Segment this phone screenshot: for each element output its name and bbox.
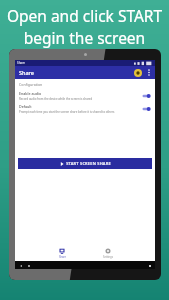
button[interactable]: More options: [145, 66, 152, 79]
staticText: Share: [59, 255, 66, 259]
button[interactable]: Share: [49, 248, 75, 259]
button[interactable]: Default: [19, 104, 151, 114]
staticText: begin the screen share: [4, 27, 165, 48]
button[interactable]: Toggle setting: [142, 93, 151, 99]
button[interactable]: Premium: [134, 69, 142, 77]
staticText: START SCREEN SHARE: [66, 161, 111, 166]
staticText: Configuration: [19, 82, 43, 87]
staticText: Share: [19, 69, 34, 76]
staticText: Default: [19, 104, 32, 109]
staticText: Share: [17, 61, 26, 65]
button[interactable]: Settings: [95, 248, 121, 259]
staticText: Record audio from the device while the s…: [19, 97, 93, 101]
button[interactable]: Enable audio: [19, 91, 151, 101]
staticText: Enable audio: [19, 91, 42, 96]
button[interactable]: Home: [27, 264, 30, 267]
button[interactable]: START SCREEN SHARE: [18, 158, 152, 169]
staticText: Prompt each time you start the screen sh…: [19, 110, 115, 114]
button[interactable]: Toggle setting: [142, 106, 151, 112]
button[interactable]: Recent apps: [148, 264, 151, 267]
button[interactable]: Back: [19, 264, 22, 267]
staticText: Open and click START to: [4, 5, 165, 26]
staticText: Settings: [103, 255, 113, 259]
